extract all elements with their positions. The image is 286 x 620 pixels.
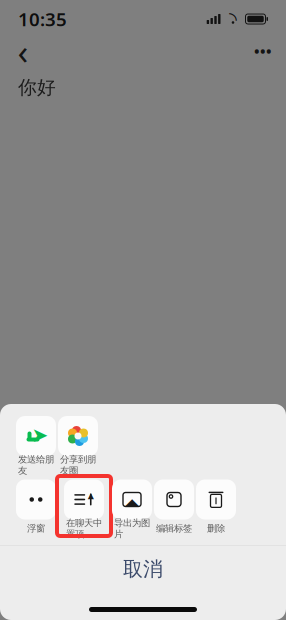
staticText: 导出为图片 xyxy=(114,517,150,540)
button[interactable]: 删除 xyxy=(195,479,237,533)
staticText: 在聊天中置顶 xyxy=(66,517,102,540)
staticText: 分享到朋友圈 xyxy=(60,453,96,476)
button[interactable]: 编辑标签 xyxy=(153,479,195,533)
staticText: 发送给朋友 xyxy=(18,453,54,476)
staticText: 编辑标签 xyxy=(156,523,192,534)
staticText: ‹ xyxy=(17,28,28,74)
staticText: 取消 xyxy=(123,557,163,581)
button[interactable]: ➤ xyxy=(15,416,57,470)
button[interactable]: ▲ xyxy=(63,479,105,533)
button[interactable]: 浮窗 xyxy=(15,479,57,533)
button[interactable]: ◢◣ xyxy=(111,479,153,533)
staticText: ◢◣ xyxy=(125,497,139,507)
staticText: ➤ xyxy=(31,424,48,446)
button[interactable]: More options xyxy=(246,34,280,68)
staticText: ◝ xyxy=(229,8,237,30)
staticText: 你好 xyxy=(18,76,56,99)
button[interactable]: 取消 xyxy=(0,546,286,592)
staticText: 删除 xyxy=(207,523,225,534)
staticText: 浮窗 xyxy=(27,523,45,534)
staticText: ••• xyxy=(254,41,272,61)
staticText: ▲ xyxy=(88,491,94,500)
button[interactable]: Back xyxy=(6,34,40,68)
button[interactable]: 分享到朋友圈 xyxy=(57,416,99,470)
staticText: 10:35 xyxy=(18,7,67,31)
